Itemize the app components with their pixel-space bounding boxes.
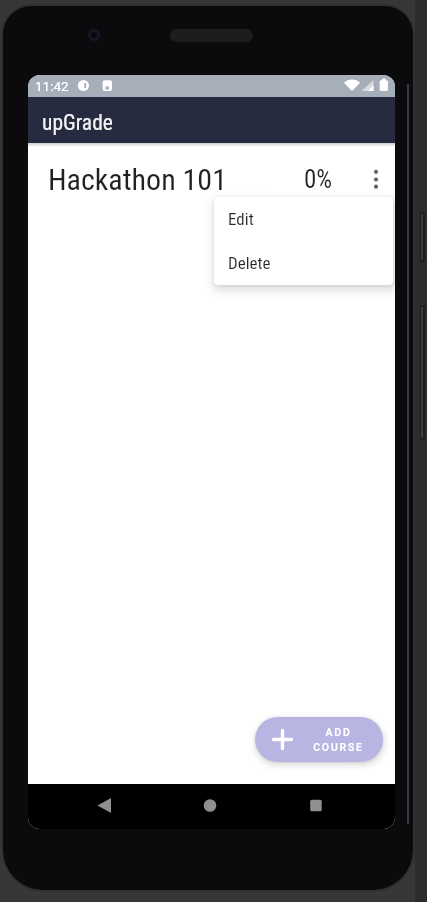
staticText: Delete [228,253,271,273]
button[interactable] [28,784,151,829]
button[interactable] [151,784,273,829]
button[interactable]: Hackathon 101 [28,143,395,215]
staticText: upGrade [42,110,113,135]
button[interactable]: Delete [214,241,393,285]
staticText: ADD [325,726,352,738]
button[interactable] [273,784,395,829]
button[interactable]: ADD [255,717,383,762]
button[interactable]: Edit [214,197,393,241]
staticText: COURSE [313,741,364,753]
staticText: 0% [304,165,333,194]
staticText: Hackathon 101 [48,162,227,197]
button[interactable] [357,143,395,215]
staticText: Edit [228,209,254,229]
staticText: 11:42 [35,78,69,94]
